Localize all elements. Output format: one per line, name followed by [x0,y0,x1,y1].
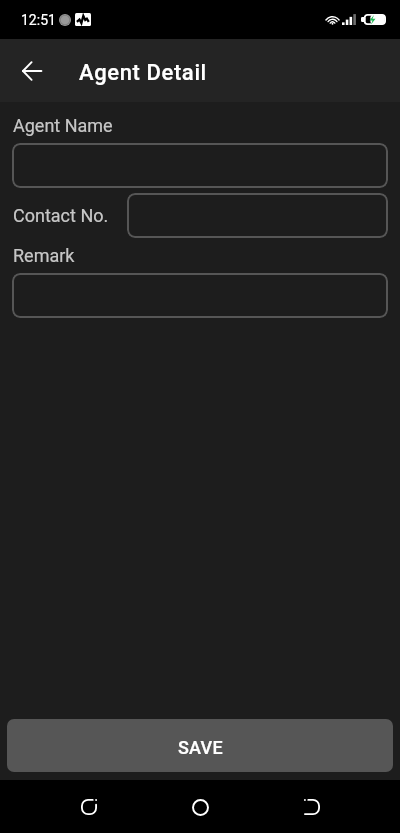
staticText: Contact No. [13,205,109,226]
button[interactable]: SAVE [7,719,393,772]
staticText: 12:51 [21,12,56,28]
button[interactable]: Back [11,50,53,92]
button[interactable]: Text field [127,193,388,238]
staticText: Remark [13,245,75,266]
staticText: SAVE [178,737,223,758]
button[interactable]: Back [289,784,335,830]
button[interactable]: Home [177,784,223,830]
button[interactable]: Recent apps [66,784,112,830]
button[interactable]: Text field [12,143,388,188]
button[interactable]: Text field [12,273,388,318]
staticText: Agent Name [13,115,113,136]
staticText: Agent Detail [79,60,207,86]
